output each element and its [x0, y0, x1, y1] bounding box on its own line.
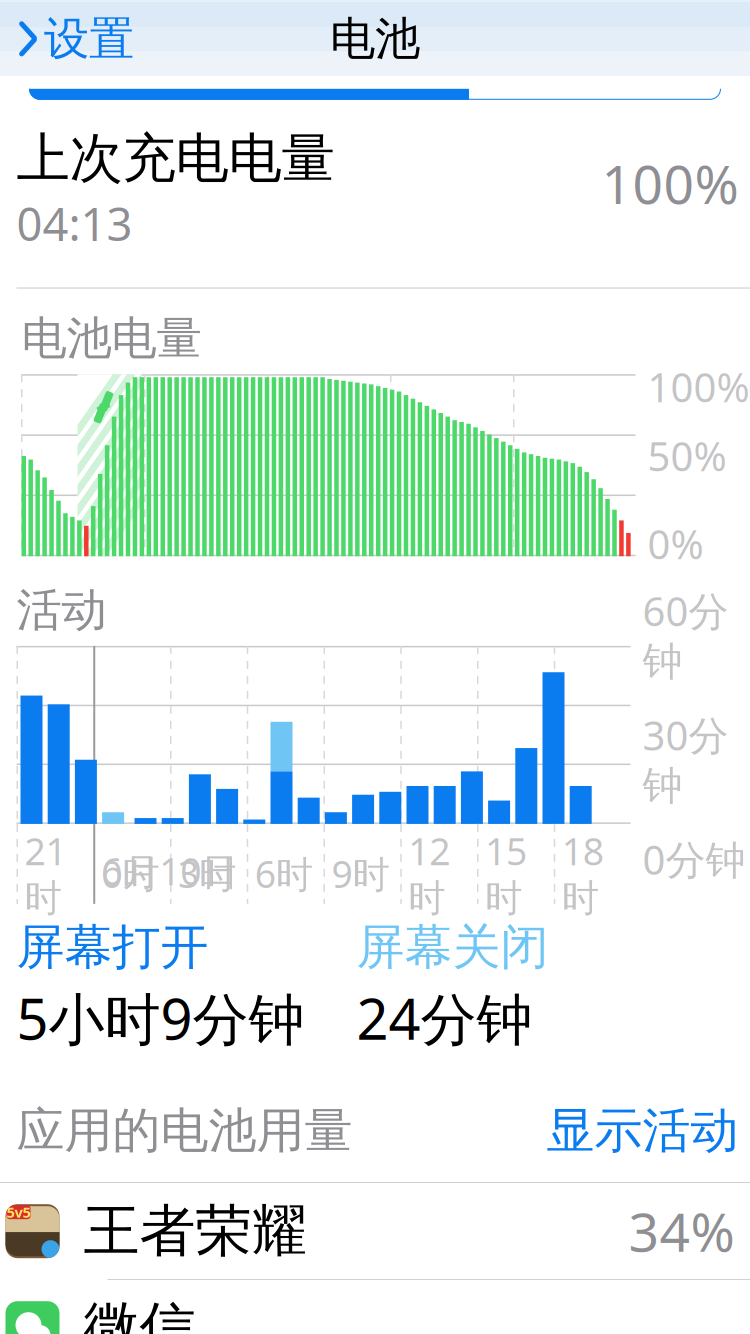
staticText: 60分钟: [642, 584, 728, 686]
staticText: 13%: [606, 0, 675, 3]
staticText: 6月10日: [101, 846, 238, 895]
staticText: 30分钟: [642, 708, 728, 810]
staticText: 24分钟: [356, 981, 532, 1055]
staticText: 屏幕关闭: [356, 918, 548, 977]
button[interactable]: 设置: [0, 2, 146, 76]
staticText: 04:13: [16, 193, 132, 253]
staticText: 5v5: [6, 1202, 30, 1222]
staticText: 18时: [562, 826, 604, 921]
staticText: 100%: [601, 148, 738, 219]
staticText: 0%: [647, 517, 703, 570]
staticText: 15时: [485, 826, 527, 921]
staticText: 屏幕打开: [16, 918, 208, 977]
staticText: 50%: [647, 429, 726, 482]
staticText: 3时: [178, 849, 236, 898]
staticText: 100%: [647, 360, 749, 413]
staticText: 34%: [628, 1196, 734, 1267]
staticText: 微信: [83, 1294, 195, 1334]
staticText: 电池: [330, 11, 420, 67]
staticText: 电池电量: [21, 310, 201, 366]
staticText: 5小时9分钟: [16, 981, 304, 1055]
staticText: 0时: [101, 849, 159, 898]
staticText: 18:13: [358, 0, 447, 3]
button[interactable]: 显示活动: [546, 1101, 738, 1160]
staticText: 显示活动: [546, 1101, 738, 1160]
staticText: 活动: [16, 582, 106, 638]
staticText: 应用的电池用量: [16, 1101, 352, 1160]
staticText: 设置: [44, 11, 134, 67]
button[interactable]: 微信: [0, 1280, 750, 1334]
staticText: 12时: [408, 826, 450, 921]
staticText: 6时: [255, 849, 313, 898]
staticText: 9时: [331, 849, 389, 898]
staticText: 0分钟: [642, 833, 745, 886]
staticText: 上次充电电量: [16, 126, 334, 191]
button[interactable]: 5v5: [0, 1183, 750, 1280]
staticText: 21时: [24, 826, 66, 921]
staticText: 王者荣耀: [83, 1197, 307, 1266]
